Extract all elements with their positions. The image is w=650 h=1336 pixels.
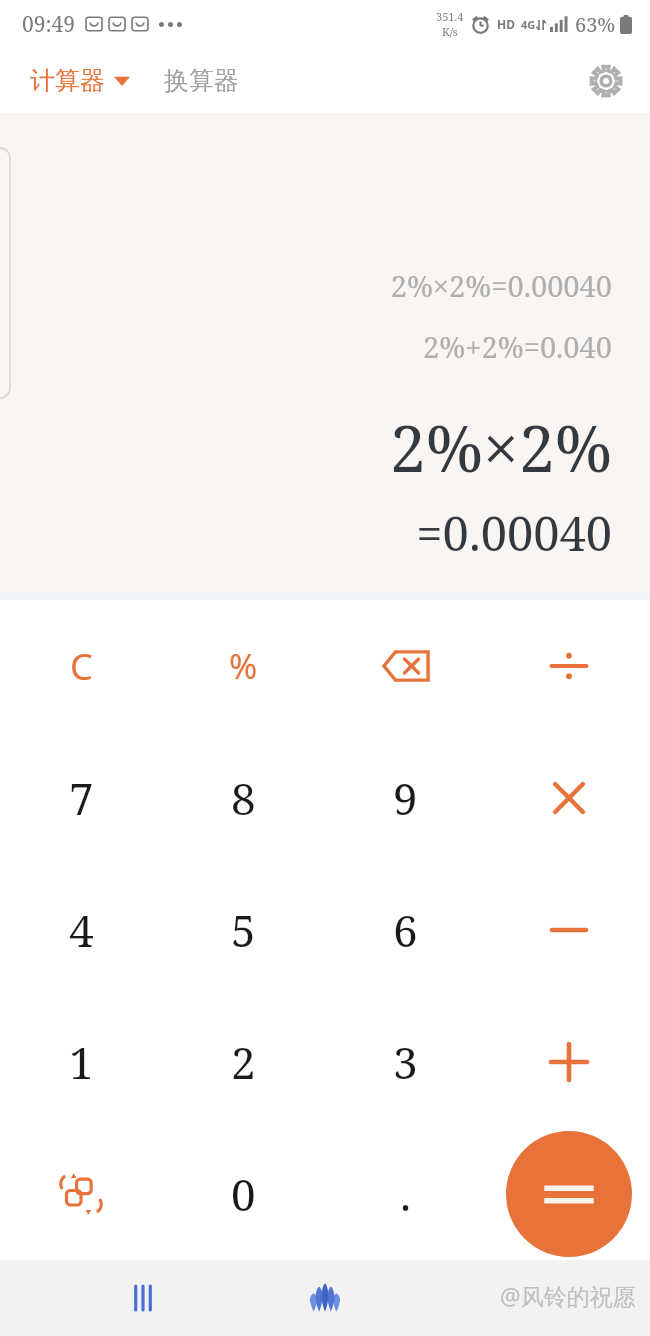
staticText: 5: [231, 900, 256, 960]
staticText: =0.00040: [416, 501, 612, 565]
staticText: 3: [393, 1032, 418, 1092]
staticText: 7: [69, 768, 94, 828]
button[interactable]: 8: [162, 732, 324, 864]
staticText: 2%+2%=0.040: [423, 327, 612, 366]
button[interactable]: 1: [0, 996, 162, 1128]
staticText: 2: [231, 1032, 256, 1092]
staticText: 351.4: [436, 9, 464, 24]
button[interactable]: Plus: [487, 996, 650, 1128]
staticText: 0: [231, 1164, 256, 1224]
staticText: K/s: [442, 24, 458, 39]
staticText: .: [400, 1164, 411, 1224]
button[interactable]: 4: [0, 864, 162, 996]
staticText: 4: [69, 900, 94, 960]
button[interactable]: .: [324, 1128, 487, 1260]
button[interactable]: Backspace: [324, 600, 487, 732]
button[interactable]: 9: [324, 732, 487, 864]
button[interactable]: 计算器: [28, 59, 132, 102]
button[interactable]: Minus: [487, 864, 650, 996]
button[interactable]: %: [162, 600, 324, 732]
staticText: HD: [497, 16, 515, 32]
button[interactable]: 6: [324, 864, 487, 996]
staticText: @风铃的祝愿: [500, 1280, 636, 1311]
staticText: 09:49: [22, 10, 75, 39]
staticText: 6: [393, 900, 418, 960]
button[interactable]: Recent apps: [108, 1263, 178, 1333]
button[interactable]: 7: [0, 732, 162, 864]
button[interactable]: Divide: [487, 600, 650, 732]
staticText: 2%×2%: [389, 404, 612, 491]
button[interactable]: 5: [162, 864, 324, 996]
button[interactable]: C: [0, 600, 162, 732]
button[interactable]: 换算器: [162, 59, 241, 102]
button[interactable]: 3: [324, 996, 487, 1128]
button[interactable]: Home: [290, 1263, 360, 1333]
staticText: 63%: [575, 11, 616, 38]
staticText: 计算器: [30, 65, 105, 96]
button[interactable]: Multiply: [487, 732, 650, 864]
staticText: 换算器: [164, 65, 239, 96]
button[interactable]: Convert: [0, 1128, 162, 1260]
staticText: 9: [393, 768, 418, 828]
staticText: %: [229, 643, 258, 689]
button[interactable]: 0: [162, 1128, 324, 1260]
staticText: 1: [69, 1032, 94, 1092]
staticText: 2%×2%=0.00040: [390, 266, 612, 305]
button[interactable]: Settings: [580, 55, 632, 107]
staticText: 8: [231, 768, 256, 828]
button[interactable]: 2: [162, 996, 324, 1128]
staticText: C: [70, 642, 93, 691]
staticText: 4G: [521, 17, 536, 32]
button[interactable]: Equals: [506, 1131, 632, 1257]
